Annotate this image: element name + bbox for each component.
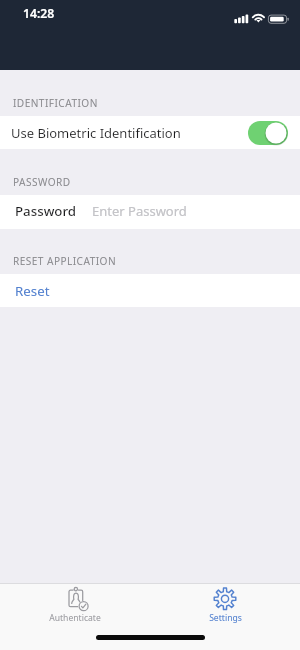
button[interactable]: Use Biometric Identification bbox=[0, 116, 300, 149]
staticText: PASSWORD bbox=[13, 175, 71, 189]
staticText: 14:28 bbox=[23, 5, 55, 22]
staticText: IDENTIFICATION bbox=[13, 96, 98, 110]
button[interactable]: Settings bbox=[150, 584, 300, 628]
button[interactable]: Biometric identification toggle, on bbox=[248, 121, 288, 145]
button[interactable]: Reset bbox=[0, 274, 300, 307]
staticText: Authenticate bbox=[49, 612, 101, 624]
staticText: Reset bbox=[15, 282, 50, 300]
button[interactable]: Authenticate bbox=[0, 584, 150, 628]
staticText: Enter Password bbox=[92, 202, 187, 220]
button[interactable]: Password bbox=[0, 195, 300, 229]
staticText: RESET APPLICATION bbox=[13, 254, 117, 268]
staticText: Password bbox=[15, 202, 77, 220]
staticText: Use Biometric Identification bbox=[11, 124, 181, 142]
staticText: Settings bbox=[209, 612, 242, 624]
